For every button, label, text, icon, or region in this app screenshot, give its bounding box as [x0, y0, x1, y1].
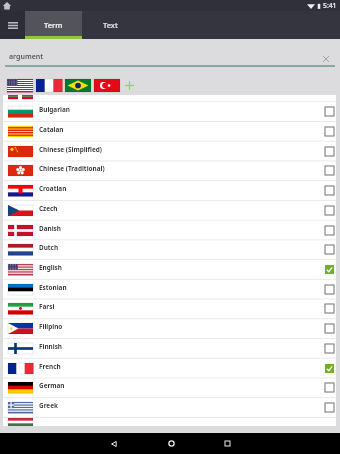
button[interactable]: Chinese (Traditional) — [3, 161, 336, 180]
staticText: argument — [9, 52, 44, 62]
staticText: Farsi — [39, 302, 55, 311]
button[interactable]: Add language — [123, 79, 136, 92]
staticText: Finnish — [39, 342, 62, 351]
button[interactable] — [3, 418, 336, 426]
button[interactable]: Czech — [3, 201, 336, 220]
button[interactable]: Text — [82, 11, 139, 39]
button[interactable]: Recent apps — [212, 433, 242, 454]
staticText: Bulgarian — [39, 105, 70, 114]
button[interactable]: Farsi — [3, 299, 336, 318]
button[interactable]: Danish — [3, 221, 336, 240]
staticText: Dutch — [39, 243, 59, 252]
button[interactable]: Bulgarian — [3, 102, 336, 121]
button[interactable]: Catalan — [3, 122, 336, 141]
staticText: Text — [103, 20, 118, 30]
button[interactable] — [7, 79, 33, 92]
button[interactable]: Home — [156, 433, 186, 454]
staticText: Chinese (Traditional) — [39, 164, 105, 173]
button[interactable] — [65, 79, 91, 92]
staticText: Catalan — [39, 125, 64, 134]
button[interactable]: English — [3, 260, 336, 279]
staticText: English — [39, 263, 62, 272]
button[interactable]: Croatian — [3, 181, 336, 200]
staticText: Estonian — [39, 283, 67, 292]
button[interactable] — [94, 79, 120, 92]
button[interactable]: Back — [99, 433, 129, 454]
staticText: German — [39, 381, 65, 390]
button[interactable]: Open navigation menu — [0, 11, 25, 39]
staticText: Greek — [39, 401, 58, 410]
staticText: 5:41 — [323, 1, 337, 10]
button[interactable]: French — [3, 359, 336, 378]
button[interactable]: Term — [25, 11, 82, 39]
staticText: French — [39, 362, 61, 371]
staticText: Danish — [39, 224, 61, 233]
staticText: Term — [44, 20, 63, 30]
staticText: Filipino — [39, 322, 63, 331]
button[interactable]: Dutch — [3, 240, 336, 259]
button[interactable]: German — [3, 378, 336, 397]
staticText: Czech — [39, 204, 58, 213]
button[interactable] — [36, 79, 62, 92]
staticText: Croatian — [39, 184, 67, 193]
staticText: Chinese (Simplified) — [39, 145, 102, 154]
button[interactable]: Greek — [3, 398, 336, 417]
button[interactable]: Chinese (Simplified) — [3, 142, 336, 161]
button[interactable]: Filipino — [3, 319, 336, 338]
button[interactable]: Estonian — [3, 280, 336, 299]
button[interactable]: Finnish — [3, 339, 336, 358]
